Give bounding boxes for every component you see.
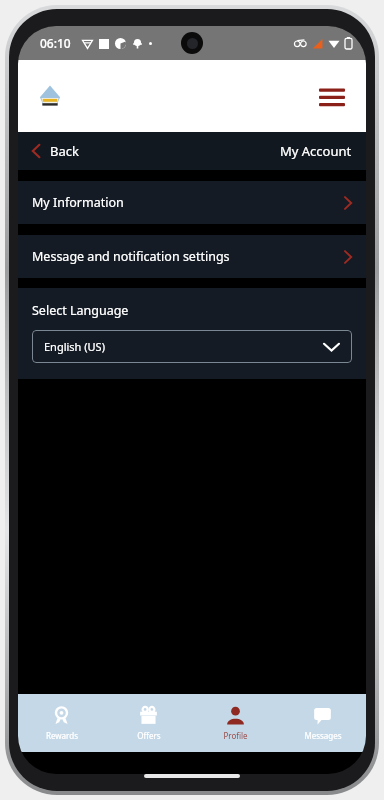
staticText: Messages xyxy=(304,730,342,741)
staticText: My Information xyxy=(32,194,344,211)
staticText: Message and notification settings xyxy=(32,248,344,265)
staticText: Offers xyxy=(137,730,161,741)
staticText: Rewards xyxy=(46,730,78,741)
staticText: Select Language xyxy=(32,302,129,319)
button[interactable]: My Information xyxy=(18,181,366,224)
button[interactable]: Messages xyxy=(279,694,366,752)
staticText: English (US) xyxy=(44,339,323,354)
staticText: My Account xyxy=(280,142,352,160)
staticText: Profile xyxy=(223,730,248,741)
button[interactable]: Rewards xyxy=(18,694,105,752)
button[interactable]: Back xyxy=(18,132,89,170)
button[interactable]: Profile xyxy=(192,694,279,752)
staticText: 06:10 xyxy=(40,35,71,51)
button[interactable]: Home logo xyxy=(32,78,68,114)
staticText: Back xyxy=(50,142,79,160)
button[interactable]: Offers xyxy=(105,694,192,752)
button[interactable]: Message and notification settings xyxy=(18,235,366,278)
button[interactable]: English (US) xyxy=(32,330,352,363)
button[interactable]: Menu xyxy=(312,76,352,116)
